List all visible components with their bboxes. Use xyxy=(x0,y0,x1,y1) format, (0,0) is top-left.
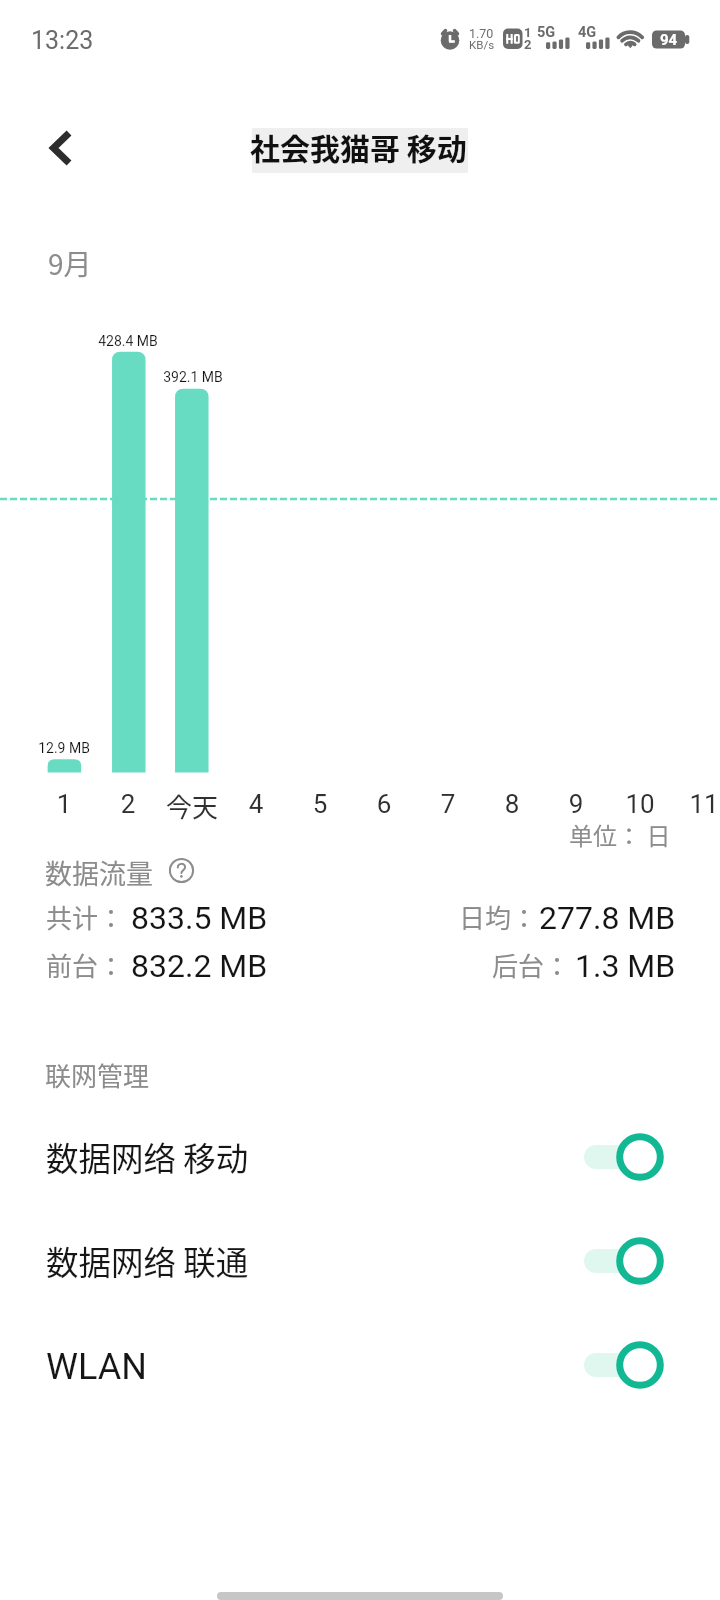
button[interactable]: 数据网络 联通 xyxy=(0,1218,720,1302)
staticText: 11 xyxy=(554,789,720,819)
staticText: 4 xyxy=(106,789,406,819)
button[interactable]: Toggle 数据网络 联通 xyxy=(584,1219,674,1303)
button[interactable]: Help xyxy=(169,858,194,883)
staticText: 94 xyxy=(660,31,678,49)
staticText: 1.70 xyxy=(469,26,494,41)
staticText: 4G xyxy=(578,24,597,41)
staticText: 日均： xyxy=(459,898,538,936)
staticText: 12.9 MB xyxy=(0,740,214,756)
staticText: 数据网络 联通 xyxy=(46,1237,249,1284)
button[interactable]: Toggle 数据网络 移动 xyxy=(584,1115,674,1199)
staticText: 社会我猫哥 移动 xyxy=(250,125,467,168)
staticText: 6 xyxy=(234,789,534,819)
staticText: 5 xyxy=(170,789,470,819)
staticText: 8 xyxy=(362,789,662,819)
staticText: 前台： xyxy=(46,946,125,984)
staticText: KB/s xyxy=(469,38,495,51)
button[interactable]: 数据网络 移动 xyxy=(0,1114,720,1198)
staticText: 833.5 MB xyxy=(131,899,268,937)
button[interactable]: WLAN xyxy=(0,1324,720,1408)
staticText: 13:23 xyxy=(31,26,94,55)
staticText: 277.8 MB xyxy=(539,899,676,937)
staticText: 428.4 MB xyxy=(0,333,278,349)
staticText: 1.3 MB xyxy=(575,947,676,985)
staticText: 832.2 MB xyxy=(131,947,268,985)
staticText: 1 xyxy=(0,789,214,819)
staticText: 1 xyxy=(524,25,532,40)
staticText: 今天 xyxy=(42,787,342,825)
staticText: 数据网络 移动 xyxy=(46,1133,249,1180)
button[interactable]: Toggle WLAN xyxy=(584,1323,674,1407)
staticText: 单位： 日 xyxy=(569,817,671,852)
staticText: 5G xyxy=(537,24,556,41)
staticText: 2 xyxy=(524,37,532,52)
staticText: WLAN xyxy=(46,1346,147,1388)
staticText: 7 xyxy=(298,789,598,819)
staticText: 共计： xyxy=(46,898,125,936)
staticText: 联网管理 xyxy=(45,1056,150,1094)
staticText: 9 xyxy=(426,789,720,819)
staticText: 392.1 MB xyxy=(43,369,343,385)
staticText: 后台： xyxy=(492,946,571,984)
button[interactable] xyxy=(252,128,468,173)
staticText: 10 xyxy=(490,789,720,819)
staticText: 9月 xyxy=(48,243,92,284)
staticText: 数据流量 xyxy=(45,853,153,892)
button[interactable]: Back xyxy=(20,114,100,182)
staticText: 2 xyxy=(0,789,278,819)
